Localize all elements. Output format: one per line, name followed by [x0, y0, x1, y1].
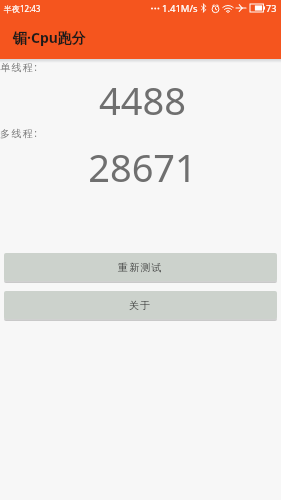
- staticText: 多线程:: [0, 126, 39, 140]
- button[interactable]: 重新测试: [4, 253, 277, 281]
- staticText: 4488: [2, 74, 281, 126]
- staticText: 单线程:: [0, 60, 39, 74]
- staticText: 1.41M/s: [162, 2, 198, 15]
- staticText: 28671: [2, 141, 281, 193]
- staticText: 半夜12:43: [4, 3, 41, 14]
- staticText: 关于: [129, 299, 152, 312]
- button[interactable]: 关于: [4, 291, 277, 319]
- staticText: 重新测试: [118, 261, 163, 274]
- staticText: 镅·Cpu跑分: [13, 28, 86, 47]
- staticText: 73: [266, 2, 277, 14]
